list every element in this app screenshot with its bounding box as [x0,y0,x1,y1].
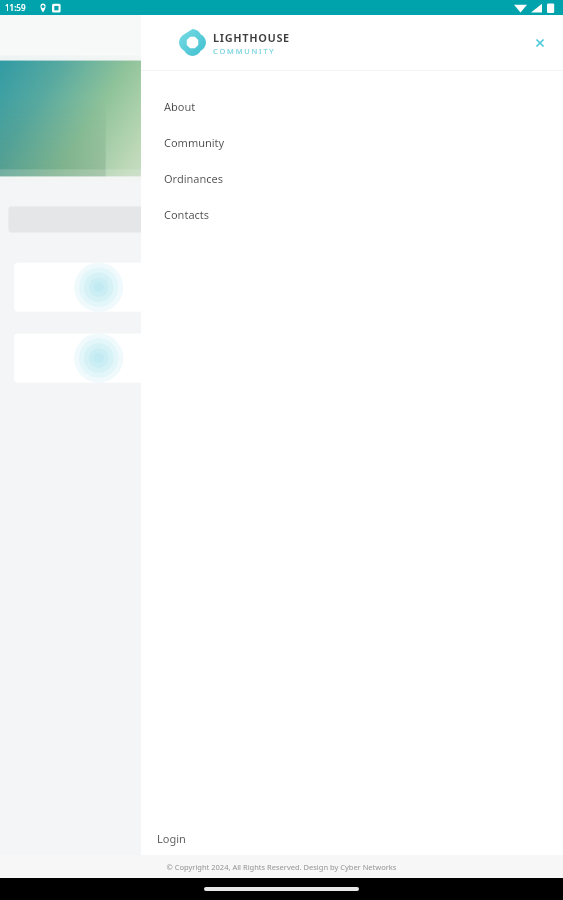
button[interactable]: LIGHTHOUSE [179,29,290,56]
button[interactable]: About [141,88,563,124]
button[interactable]: Contacts [141,196,563,232]
button[interactable]: Close menu [525,28,555,58]
staticText: Community [164,135,225,150]
staticText: LIGHTHOUSE [213,30,290,45]
button[interactable]: Community [141,124,563,160]
staticText: About [164,99,196,114]
staticText: Ordinances [164,171,224,186]
staticText: 11:59 [5,2,26,13]
staticText: Login [157,831,186,846]
button[interactable]: Login [141,821,563,855]
staticText: COMMUNITY [213,46,276,56]
button[interactable]: Ordinances [141,160,563,196]
staticText: Contacts [164,207,210,222]
staticText: © Copyright 2024, All Rights Reserved. D… [0,862,563,872]
